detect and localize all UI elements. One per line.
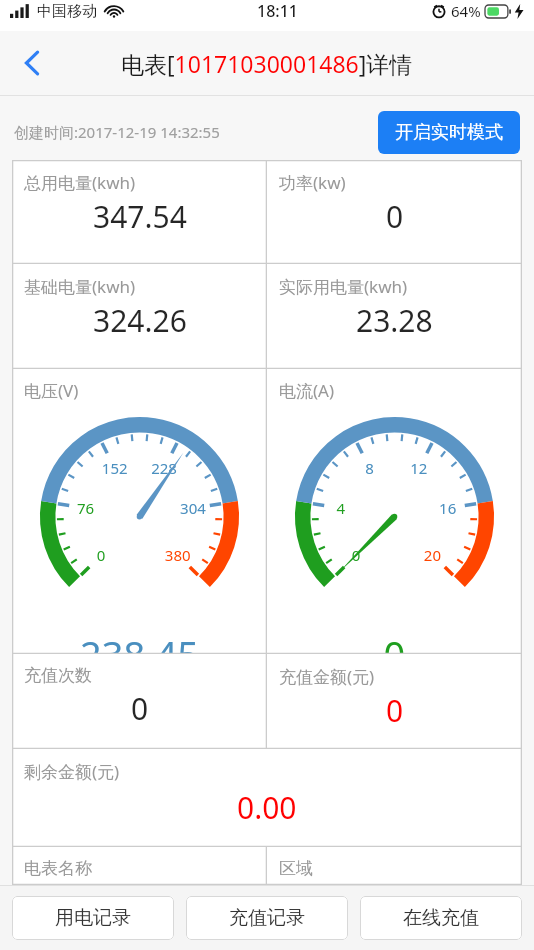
staticText: 实际用电量(kwh) [279,275,408,298]
staticText: 0 [386,196,404,237]
staticText: 总用电量(kwh) [24,171,136,194]
button[interactable]: 开启实时模式 [378,111,520,154]
staticText: 347.54 [93,196,187,237]
staticText: 充值金额(元) [279,665,375,688]
staticText: 64% [451,1,481,21]
staticText: 功率(kw) [279,171,346,194]
staticText: 324.26 [93,300,187,341]
staticText: 剩余金额(元) [24,760,120,783]
button[interactable]: 在线充值 [360,896,522,940]
staticText: 电表[10171030001486]详情 [121,48,413,79]
staticText: 创建时间:2017-12-19 14:32:55 [14,122,220,142]
staticText: 中国移动 [37,2,97,21]
staticText: 区域 [279,858,313,879]
staticText: 用电记录 [55,906,131,930]
staticText: 开启实时模式 [395,121,503,144]
staticText: 电表名称 [24,858,92,879]
staticText: 18:11 [257,0,298,22]
staticText: 0.00 [237,787,297,828]
staticText: 23.28 [356,300,433,341]
button[interactable]: 用电记录 [12,896,174,940]
staticText: 电压(V) [24,379,79,402]
staticText: 充值次数 [24,665,92,686]
staticText: 充值记录 [229,906,305,930]
staticText: 0 [386,690,404,731]
button[interactable]: 返回 [0,31,64,95]
staticText: 基础电量(kwh) [24,275,136,298]
staticText: 电流(A) [279,379,335,402]
staticText: 在线充值 [403,906,479,930]
button[interactable]: 充值记录 [186,896,348,940]
staticText: 0 [131,688,149,729]
